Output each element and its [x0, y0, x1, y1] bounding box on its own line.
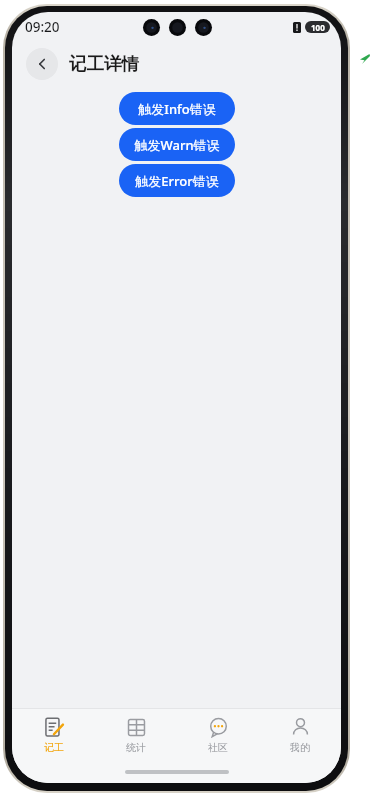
staticText: 统计	[126, 741, 146, 754]
staticText: 09:20	[25, 18, 60, 36]
button[interactable]: Back	[26, 48, 58, 80]
staticText: 触发Warn错误	[134, 136, 220, 154]
button[interactable]: 触发Warn错误	[119, 128, 235, 161]
button[interactable]: 触发Info错误	[119, 92, 235, 125]
staticText: 记工	[44, 741, 64, 754]
staticText: 触发Info错误	[138, 100, 216, 118]
staticText: 触发Error错误	[135, 172, 219, 190]
button[interactable]: 我的	[259, 709, 341, 761]
button[interactable]: 社区	[177, 709, 259, 761]
staticText: 记工详情	[69, 53, 139, 75]
staticText: 100	[311, 22, 325, 33]
button[interactable]: 统计	[95, 709, 177, 761]
staticText: 社区	[208, 741, 228, 754]
button[interactable]: 触发Error错误	[119, 164, 235, 197]
button[interactable]: 记工	[12, 709, 95, 761]
staticText: 我的	[290, 741, 310, 754]
